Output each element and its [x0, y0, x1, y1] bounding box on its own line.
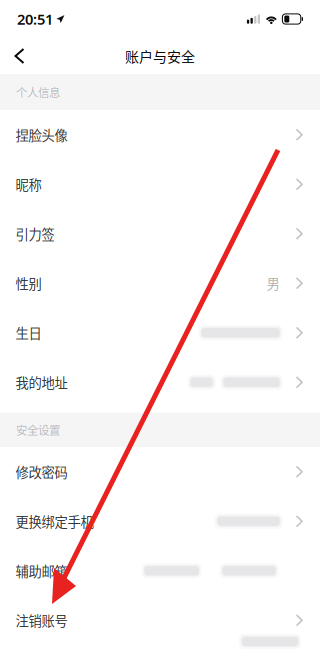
- staticText: 昵称: [15, 175, 41, 194]
- button[interactable]: 修改密码: [0, 447, 320, 496]
- button[interactable]: 返回: [0, 38, 54, 74]
- button[interactable]: 引力签: [0, 209, 320, 258]
- button[interactable]: 辅助邮箱: [0, 546, 320, 595]
- staticText: 辅助邮箱: [15, 561, 67, 580]
- staticText: 我的地址: [15, 373, 67, 392]
- staticText: 更换绑定手机: [15, 512, 93, 531]
- staticText: 安全设置: [16, 421, 60, 438]
- button[interactable]: 性别: [0, 258, 320, 308]
- button[interactable]: 我的地址: [0, 357, 320, 407]
- staticText: 20:51: [17, 9, 53, 29]
- button[interactable]: 生日: [0, 308, 320, 357]
- staticText: 生日: [15, 323, 41, 342]
- staticText: 账户与安全: [125, 46, 195, 66]
- staticText: 性别: [15, 274, 41, 293]
- button[interactable]: 注销账号: [0, 595, 320, 645]
- button[interactable]: 捏脸头像: [0, 110, 320, 159]
- staticText: 修改密码: [15, 462, 67, 481]
- staticText: 引力签: [15, 224, 54, 243]
- staticText: 捏脸头像: [15, 125, 67, 144]
- staticText: 个人信息: [16, 84, 60, 100]
- button[interactable]: 更换绑定手机: [0, 496, 320, 546]
- staticText: 男: [267, 274, 280, 293]
- staticText: 注销账号: [15, 611, 67, 630]
- button[interactable]: 昵称: [0, 159, 320, 209]
